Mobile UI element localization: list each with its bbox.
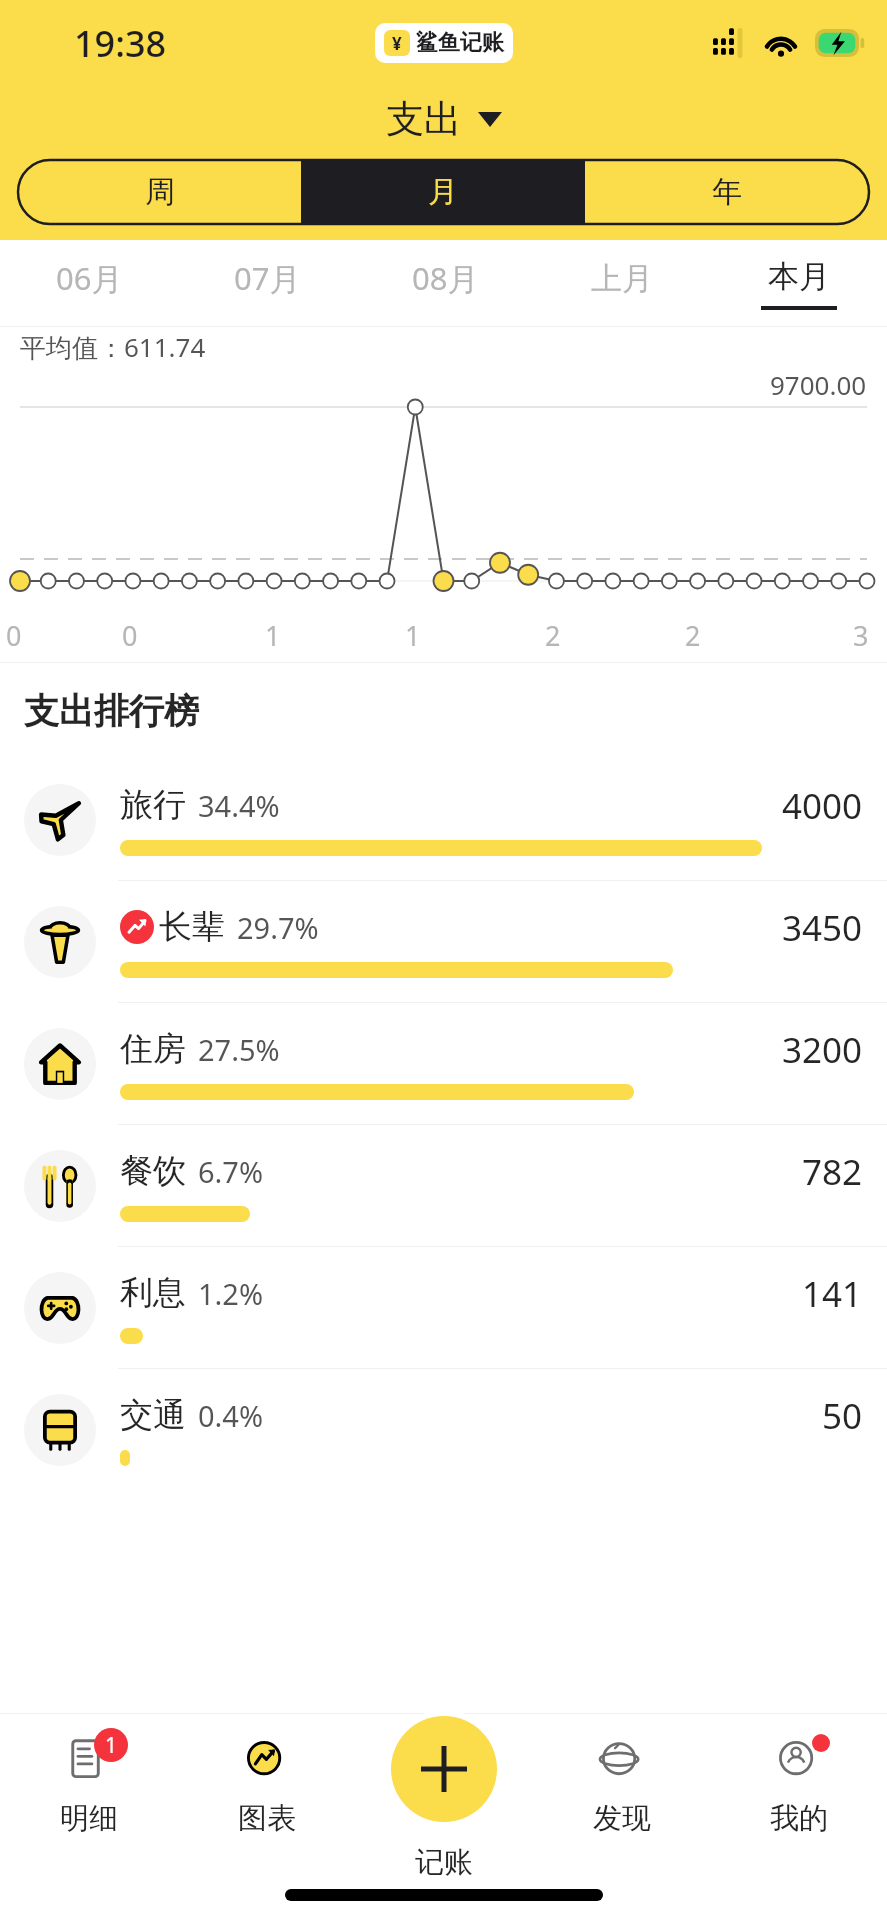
staticText: 27.5% [198, 1030, 280, 1069]
staticText: 20 [545, 617, 573, 661]
button[interactable]: 住房 [0, 1003, 887, 1124]
staticText: 支出排行榜 [24, 689, 199, 733]
staticText: 141 [802, 1270, 863, 1318]
staticText: 平均值：611.74 [20, 329, 206, 365]
staticText: 本月 [768, 257, 830, 296]
staticText: 利息 [120, 1272, 186, 1314]
staticText: 1.2% [198, 1274, 264, 1313]
staticText: 月 [428, 173, 458, 211]
button[interactable]: 交通 [0, 1369, 887, 1490]
button[interactable]: 我的 [710, 1714, 887, 1862]
button[interactable]: 本月 [710, 240, 887, 326]
staticText: 图表 [238, 1800, 296, 1837]
button[interactable]: 记账 [391, 1716, 497, 1822]
staticText: 50 [822, 1392, 863, 1440]
staticText: 31 [853, 617, 881, 661]
button[interactable]: 支出 [376, 91, 512, 147]
staticText: 鲨鱼记账 [416, 29, 504, 57]
staticText: 1 [105, 1731, 118, 1760]
staticText: 餐饮 [120, 1150, 186, 1192]
staticText: 08月 [412, 257, 479, 299]
staticText: 长辈 [159, 906, 225, 948]
staticText: 年 [712, 173, 742, 211]
button[interactable]: 08月 [356, 240, 533, 326]
staticText: 3200 [782, 1026, 863, 1074]
staticText: 07月 [234, 257, 301, 299]
button[interactable]: 07月 [178, 240, 356, 326]
staticText: 01 [6, 617, 35, 661]
button[interactable]: 月 [301, 160, 585, 224]
button[interactable]: 06月 [0, 240, 178, 326]
staticText: 06月 [56, 257, 123, 299]
staticText: 10 [265, 617, 293, 661]
button[interactable]: 餐饮 [0, 1125, 887, 1246]
button[interactable]: 1 [0, 1714, 178, 1862]
button[interactable]: 发现 [533, 1714, 710, 1862]
staticText: 我的 [770, 1800, 828, 1837]
staticText: 明细 [60, 1800, 118, 1837]
button[interactable]: 旅行 [0, 759, 887, 880]
staticText: 782 [802, 1148, 863, 1196]
staticText: 支出 [386, 95, 462, 143]
button[interactable]: 利息 [0, 1247, 887, 1368]
staticText: 3450 [782, 904, 863, 952]
staticText: 记账 [415, 1844, 473, 1881]
staticText: 19:38 [74, 19, 167, 68]
button[interactable]: 图表 [178, 1714, 356, 1862]
staticText: ¥ [392, 32, 402, 55]
staticText: 旅行 [120, 784, 186, 826]
staticText: 9700.00 [770, 367, 867, 399]
button[interactable]: 周 [18, 160, 301, 224]
button[interactable]: 长辈 [0, 881, 887, 1002]
staticText: 发现 [593, 1800, 651, 1837]
staticText: 交通 [120, 1394, 186, 1436]
staticText: 15 [405, 617, 433, 661]
staticText: 住房 [120, 1028, 186, 1070]
staticText: 05 [122, 617, 151, 661]
staticText: 34.4% [198, 786, 280, 825]
staticText: 周 [145, 173, 175, 211]
staticText: 0.4% [198, 1396, 264, 1435]
staticText: 25 [685, 617, 713, 661]
staticText: 4000 [782, 782, 863, 830]
staticText: 上月 [591, 259, 653, 298]
button[interactable]: 上月 [533, 240, 710, 326]
staticText: 6.7% [198, 1152, 264, 1191]
staticText: 29.7% [237, 908, 319, 947]
button[interactable]: 年 [585, 160, 869, 224]
